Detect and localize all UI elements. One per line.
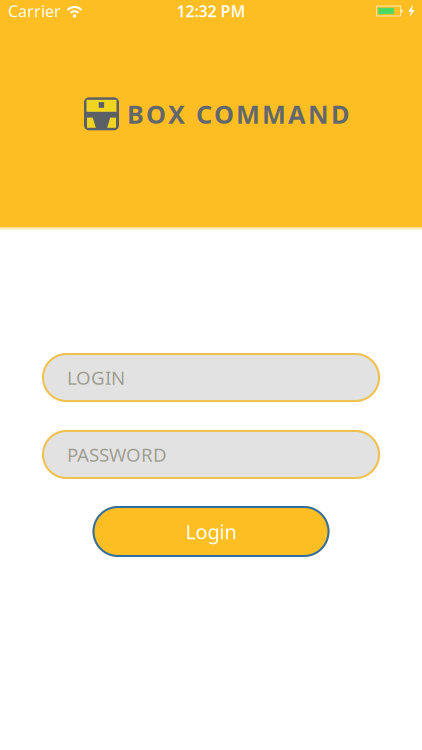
textField[interactable]: LOGIN [67, 365, 380, 390]
staticText: 12:32 PM [176, 0, 245, 22]
button[interactable]: Login [92, 506, 329, 557]
staticText: Carrier [8, 0, 61, 22]
staticText: PASSWORD [67, 442, 167, 467]
staticText: LOGIN [67, 365, 125, 390]
staticText: BOX COMMAND [127, 97, 350, 131]
staticText: Login [185, 518, 236, 545]
textField[interactable]: PASSWORD [67, 442, 380, 467]
